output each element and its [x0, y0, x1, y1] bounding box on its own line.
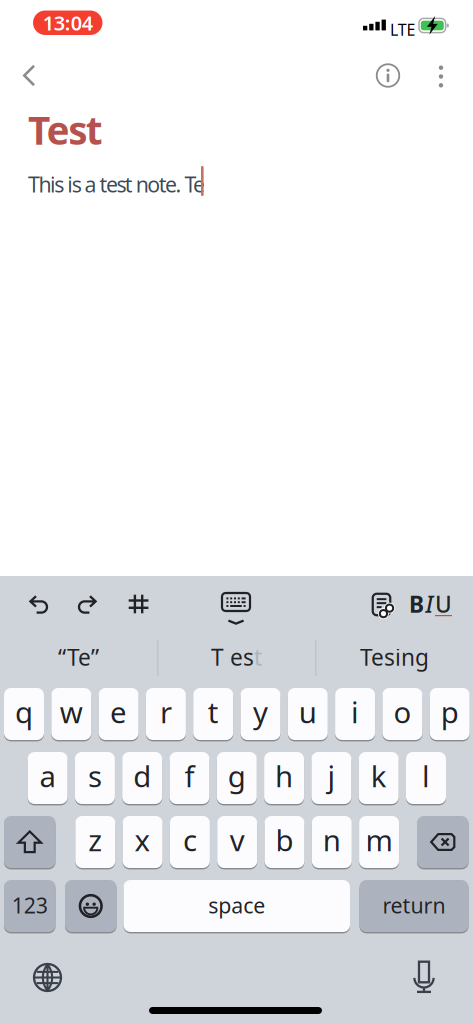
button[interactable]: f [169, 752, 209, 804]
button[interactable]: j [311, 752, 351, 804]
button[interactable]: u [288, 688, 328, 740]
staticText: LTE [390, 19, 416, 40]
staticText: return [382, 891, 445, 919]
staticText: o [393, 692, 411, 731]
button[interactable]: y [240, 688, 280, 740]
button[interactable]: c [170, 816, 210, 868]
button[interactable] [29, 595, 48, 614]
button[interactable]: z [75, 816, 115, 868]
button[interactable]: m [359, 816, 399, 868]
button[interactable] [4, 816, 55, 868]
button[interactable]: p [430, 688, 470, 740]
button[interactable]: v [217, 816, 257, 868]
staticText: y [253, 692, 268, 731]
staticText: T es [211, 642, 254, 672]
button[interactable] [78, 595, 97, 614]
button[interactable]: 13:04 [33, 10, 102, 35]
staticText: m [366, 820, 393, 859]
button[interactable]: d [122, 752, 162, 804]
staticText: l [422, 756, 430, 795]
button[interactable]: B [409, 592, 452, 616]
button[interactable]: b [264, 816, 304, 868]
button[interactable] [23, 64, 35, 86]
staticText: f [184, 756, 194, 795]
staticText: k [371, 756, 387, 795]
button[interactable]: space [123, 880, 350, 932]
button[interactable] [65, 880, 116, 932]
button[interactable] [222, 593, 250, 625]
button[interactable]: k [359, 752, 399, 804]
button[interactable]: o [382, 688, 422, 740]
staticText: g [228, 756, 246, 795]
staticText: “Te” [58, 642, 99, 672]
staticText: i [351, 692, 359, 731]
button[interactable]: T es [158, 630, 315, 684]
staticText: Tesing [360, 642, 429, 672]
staticText: x [135, 820, 151, 859]
staticText: q [15, 692, 33, 731]
button[interactable]: r [146, 688, 186, 740]
button[interactable]: t [193, 688, 233, 740]
staticText: t [208, 692, 219, 731]
staticText: space [208, 891, 265, 919]
button[interactable]: s [75, 752, 115, 804]
staticText: I [425, 589, 433, 619]
staticText: This is a test note. Te [28, 170, 205, 198]
staticText: c [183, 820, 197, 859]
button[interactable]: “Te” [0, 630, 157, 684]
button[interactable]: q [4, 688, 44, 740]
staticText: U [435, 589, 452, 619]
button[interactable]: l [406, 752, 446, 804]
button[interactable] [370, 592, 392, 616]
button[interactable]: w [51, 688, 91, 740]
button[interactable] [33, 963, 61, 991]
staticText: w [60, 692, 83, 731]
staticText: B [409, 589, 424, 619]
staticText: 13:04 [43, 9, 93, 36]
button[interactable]: g [217, 752, 257, 804]
staticText: j [327, 756, 335, 795]
button[interactable] [413, 960, 435, 993]
button[interactable] [432, 64, 450, 88]
button[interactable]: a [28, 752, 68, 804]
staticText: Test [28, 104, 103, 155]
staticText: t [254, 642, 262, 672]
staticText: e [110, 692, 127, 731]
button[interactable] [128, 593, 148, 614]
button[interactable]: 123 [4, 880, 55, 932]
staticText: h [275, 756, 293, 795]
button[interactable]: n [312, 816, 352, 868]
staticText: a [40, 756, 56, 795]
staticText: v [230, 820, 245, 859]
staticText: p [441, 692, 459, 731]
staticText: u [299, 692, 317, 731]
staticText: 123 [12, 891, 48, 919]
button[interactable]: e [99, 688, 139, 740]
button[interactable]: Tesing [316, 630, 473, 684]
staticText: r [160, 692, 172, 731]
button[interactable] [376, 63, 400, 87]
button[interactable]: x [123, 816, 163, 868]
staticText: b [275, 820, 293, 859]
staticText: z [88, 820, 102, 859]
button[interactable]: return [359, 880, 468, 932]
button[interactable]: h [264, 752, 304, 804]
staticText: s [88, 756, 102, 795]
staticText: n [323, 820, 341, 859]
staticText: d [133, 756, 151, 795]
button[interactable] [417, 816, 468, 868]
button[interactable]: i [335, 688, 375, 740]
